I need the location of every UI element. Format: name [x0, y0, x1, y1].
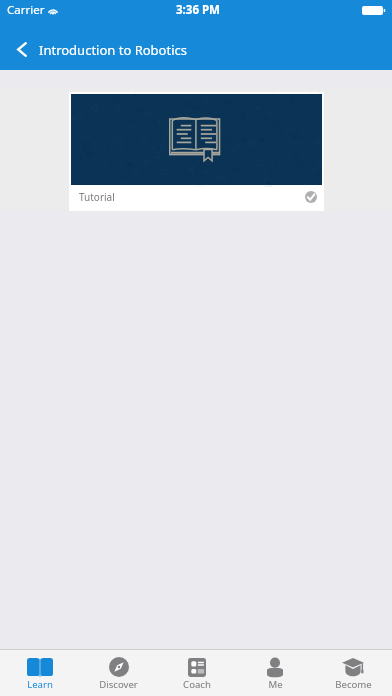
staticText: Introduction to Robotics [39, 41, 187, 59]
button[interactable]: Coach [158, 650, 236, 696]
staticText: Tutorial [79, 190, 115, 204]
button[interactable]: Tutorial [69, 92, 324, 211]
button[interactable]: Me [236, 650, 314, 696]
staticText: Discover [99, 678, 138, 691]
staticText: Coach [183, 678, 211, 691]
button[interactable]: Become [314, 650, 392, 696]
button[interactable]: Back [3, 30, 41, 68]
staticText: Learn [27, 678, 53, 691]
staticText: Me [268, 678, 283, 691]
staticText: 3:36 PM [176, 2, 220, 18]
button[interactable]: Learn [0, 650, 79, 696]
staticText: Carrier [7, 2, 45, 18]
button[interactable]: Discover [79, 650, 158, 696]
staticText: Become [335, 678, 372, 691]
